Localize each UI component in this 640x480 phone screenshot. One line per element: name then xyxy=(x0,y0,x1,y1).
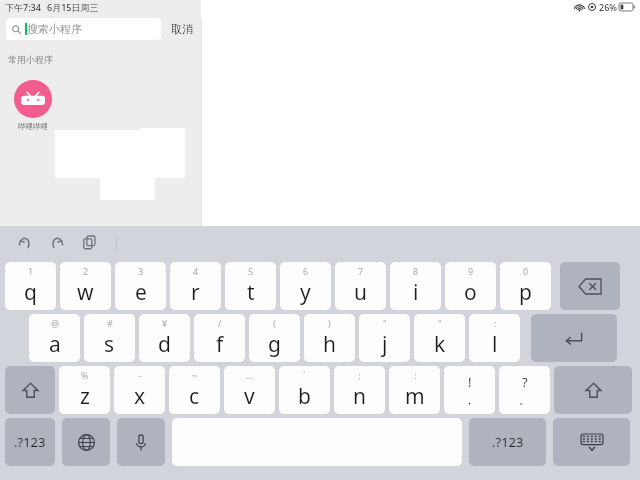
staticText: y xyxy=(300,278,311,307)
staticText: 6月15日周三 xyxy=(47,1,99,13)
staticText: c xyxy=(189,382,200,411)
staticText: a xyxy=(49,330,61,359)
staticText: m xyxy=(405,382,425,411)
staticText: e xyxy=(135,278,147,307)
button[interactable]: @ xyxy=(29,314,80,362)
staticText: ( xyxy=(273,317,276,329)
staticText: 2 xyxy=(83,265,89,277)
staticText: ? xyxy=(522,373,528,391)
button[interactable]: ¥ xyxy=(139,314,190,362)
button[interactable]: ： xyxy=(389,366,440,414)
staticText: o xyxy=(464,278,477,307)
button[interactable]: .?123 xyxy=(469,418,546,466)
button[interactable]: " xyxy=(359,314,410,362)
staticText: v xyxy=(244,382,255,411)
button[interactable]: / xyxy=(194,314,245,362)
staticText: 搜索小程序 xyxy=(27,22,82,36)
button[interactable]: 2 xyxy=(60,262,111,310)
button[interactable]: 8 xyxy=(390,262,441,310)
button[interactable]: " xyxy=(414,314,465,362)
button[interactable]: ! xyxy=(444,366,495,414)
staticText: j xyxy=(382,330,388,359)
button[interactable]: : xyxy=(469,314,520,362)
button[interactable]: 9 xyxy=(445,262,496,310)
button[interactable]: Undo xyxy=(12,229,38,255)
button[interactable]: Hide keyboard xyxy=(553,418,630,466)
staticText: q xyxy=(24,278,37,307)
staticText: 6 xyxy=(303,265,309,277)
button[interactable]: Return xyxy=(531,314,617,362)
button[interactable]: 哔哩哔哩 xyxy=(10,80,56,131)
staticText: ) xyxy=(328,317,331,329)
button[interactable]: ~ xyxy=(169,366,220,414)
button[interactable]: Redo xyxy=(44,229,70,255)
button[interactable]: Switch keyboard xyxy=(62,418,110,466)
staticText: 4 xyxy=(193,265,199,277)
staticText: 9 xyxy=(468,265,474,277)
staticText: k xyxy=(434,330,446,359)
button[interactable]: … xyxy=(224,366,275,414)
staticText: " xyxy=(383,317,387,329)
button[interactable]: 7 xyxy=(335,262,386,310)
staticText: 5 xyxy=(248,265,254,277)
button[interactable]: ? xyxy=(499,366,550,414)
staticText: n xyxy=(353,382,366,411)
staticText: x xyxy=(134,382,146,411)
button[interactable]: ( xyxy=(249,314,300,362)
staticText: ¥ xyxy=(162,317,168,329)
staticText: " xyxy=(438,317,442,329)
staticText: 1 xyxy=(28,265,34,277)
button[interactable]: 3 xyxy=(115,262,166,310)
staticText: 0 xyxy=(523,265,529,277)
staticText: b xyxy=(298,382,311,411)
button[interactable]: 5 xyxy=(225,262,276,310)
staticText: 26% xyxy=(599,1,617,13)
staticText: ， xyxy=(464,393,475,407)
button[interactable]: % xyxy=(59,366,110,414)
staticText: u xyxy=(354,278,367,307)
button[interactable]: ； xyxy=(334,366,385,414)
button[interactable]: 6 xyxy=(280,262,331,310)
staticText: : xyxy=(494,317,497,329)
button[interactable]: .?123 xyxy=(5,418,55,466)
button[interactable]: Backspace xyxy=(560,262,620,310)
button[interactable]: 搜索小程序 xyxy=(6,18,161,40)
staticText: 下午7:34 xyxy=(5,1,41,13)
staticText: % xyxy=(81,369,89,381)
button[interactable]: Dictation xyxy=(117,418,165,466)
button[interactable]: 4 xyxy=(170,262,221,310)
button[interactable]: ) xyxy=(304,314,355,362)
button[interactable]: ` xyxy=(279,366,330,414)
staticText: 3 xyxy=(138,265,144,277)
staticText: 取消 xyxy=(171,22,193,36)
button[interactable]: # xyxy=(84,314,135,362)
staticText: ： xyxy=(411,370,420,381)
staticText: 哔哩哔哩 xyxy=(18,122,48,131)
staticText: r xyxy=(191,278,200,307)
staticText: d xyxy=(158,330,171,359)
button[interactable]: 1 xyxy=(5,262,56,310)
staticText: g xyxy=(268,330,281,359)
staticText: ； xyxy=(355,370,364,381)
staticText: h xyxy=(323,330,336,359)
button[interactable]: Shift xyxy=(5,366,55,414)
staticText: i xyxy=(413,278,419,307)
staticText: .?123 xyxy=(492,433,524,451)
button[interactable]: Shift xyxy=(554,366,632,414)
button[interactable]: 取消 xyxy=(169,19,195,39)
staticText: s xyxy=(104,330,115,359)
staticText: z xyxy=(80,382,90,411)
staticText: @ xyxy=(51,317,60,329)
staticText: ! xyxy=(468,373,472,391)
staticText: … xyxy=(246,369,254,381)
staticText: 7 xyxy=(358,265,364,277)
button[interactable]: 0 xyxy=(500,262,551,310)
staticText: t xyxy=(247,278,255,307)
staticText: 8 xyxy=(413,265,419,277)
button[interactable]: Paste xyxy=(76,229,102,255)
staticText: 常用小程序 xyxy=(8,54,53,65)
staticText: / xyxy=(218,317,222,329)
staticText: ~ xyxy=(192,369,198,381)
button[interactable]: - xyxy=(114,366,165,414)
